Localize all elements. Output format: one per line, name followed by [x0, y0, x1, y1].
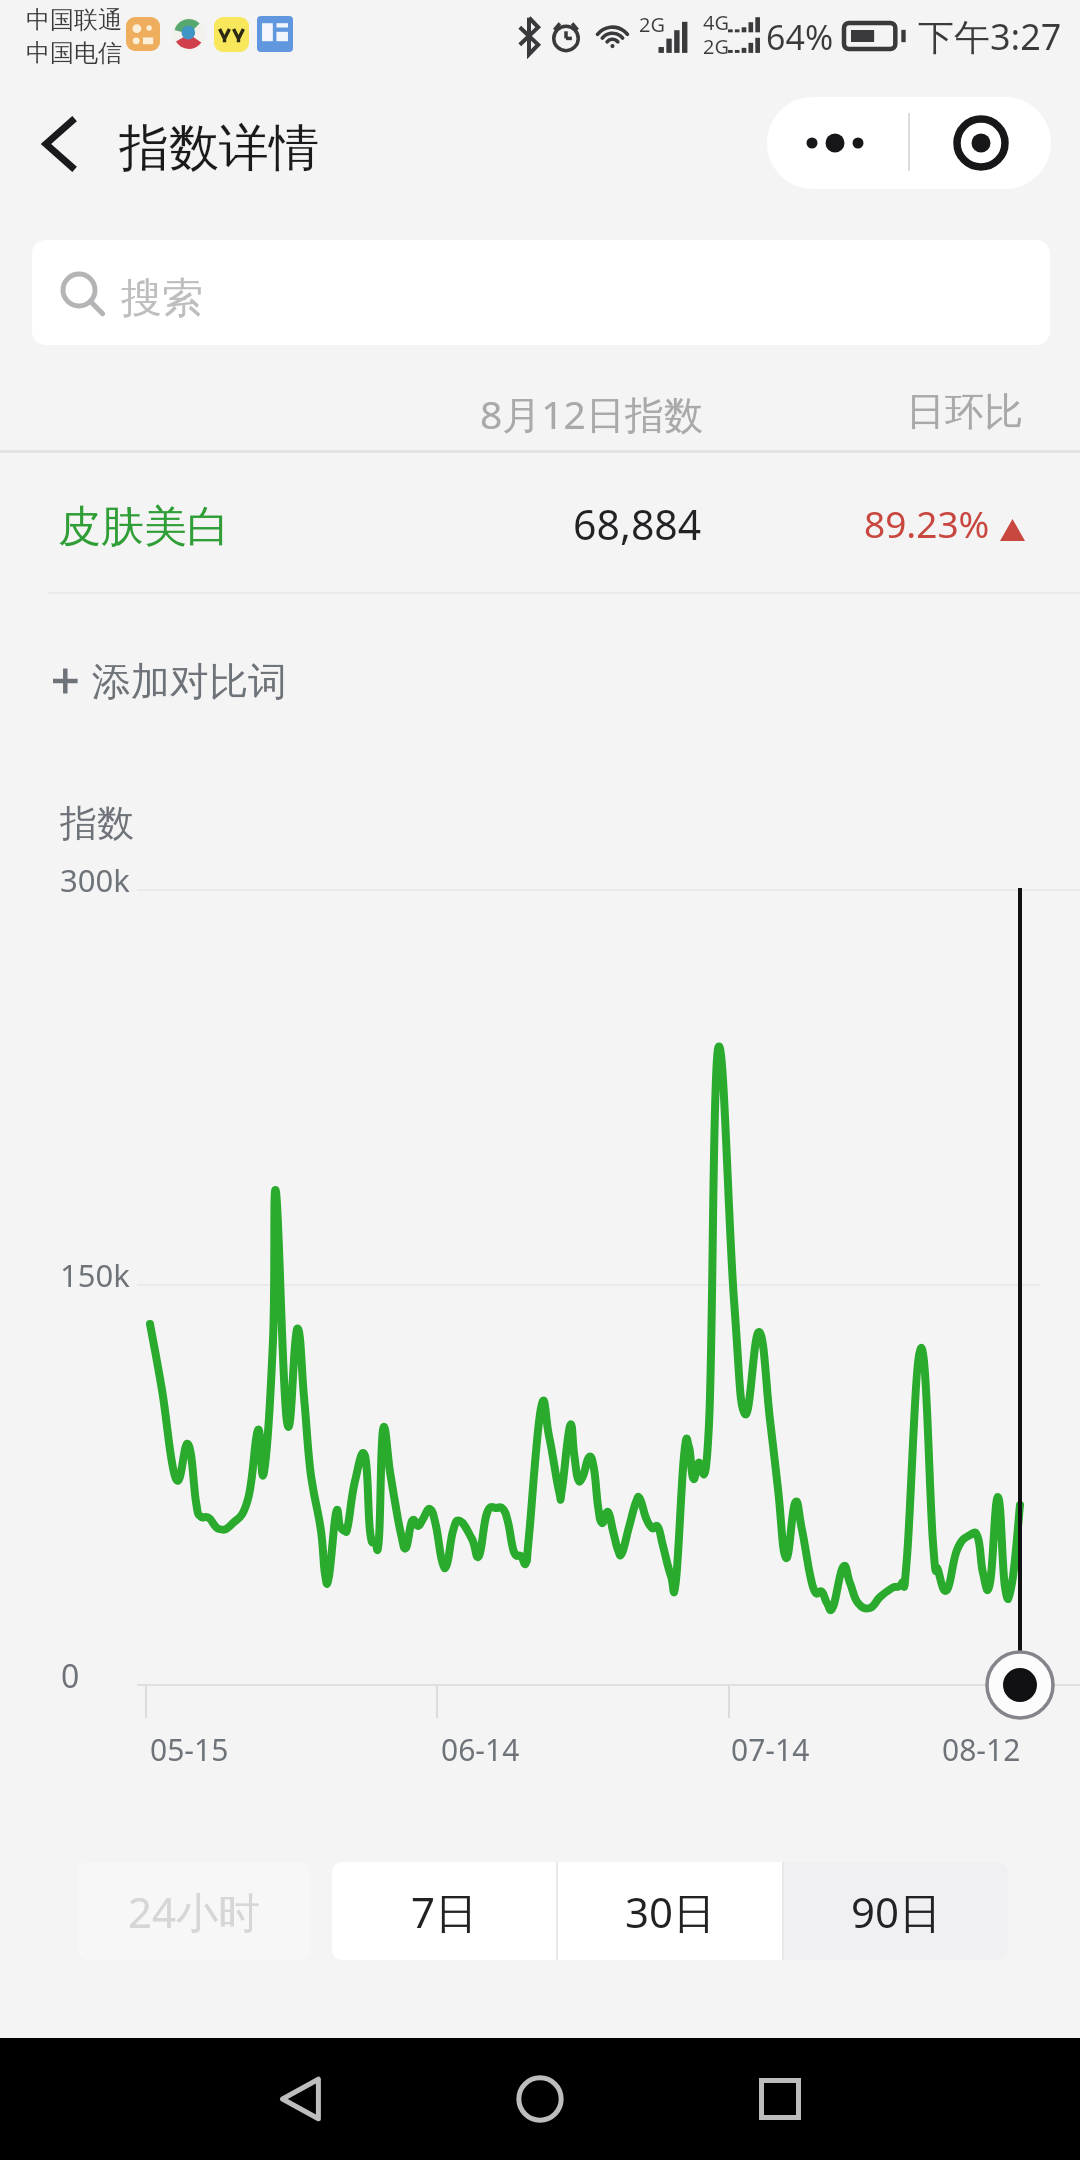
button[interactable]: Home	[492, 2038, 588, 2160]
staticText: 指数	[60, 800, 134, 847]
button[interactable]: Back	[252, 2038, 348, 2160]
staticText: 89.23%	[864, 498, 990, 548]
staticText: 07-14	[731, 1729, 810, 1770]
staticText: 4G	[703, 9, 729, 36]
staticText: 日环比	[906, 387, 1023, 436]
staticText: 300k	[60, 859, 130, 901]
staticText: 皮肤美白	[58, 500, 230, 554]
staticText: 8月12日指数	[480, 387, 703, 440]
button[interactable]: Back	[18, 104, 98, 184]
staticText: 2G	[703, 33, 729, 60]
staticText: 24小时	[128, 1883, 261, 1940]
staticText: 90日	[851, 1883, 942, 1940]
button[interactable]: Recent apps	[732, 2038, 828, 2160]
button[interactable]: 30日	[558, 1862, 782, 1960]
button[interactable]: 皮肤美白	[0, 451, 1080, 593]
staticText: 下午3:27	[918, 12, 1062, 61]
staticText: 150k	[60, 1254, 130, 1296]
staticText: 中国联通	[26, 5, 122, 35]
staticText: 30日	[625, 1883, 716, 1940]
staticText: 搜索	[121, 273, 203, 325]
staticText: 68,884	[573, 496, 702, 552]
staticText: 2G	[639, 11, 665, 38]
staticText: 7日	[411, 1883, 478, 1940]
staticText: 指数详情	[119, 117, 319, 180]
button[interactable]: 24小时	[78, 1862, 310, 1960]
staticText: 05-15	[150, 1729, 229, 1770]
button[interactable]: 90日	[784, 1862, 1008, 1960]
staticText: 添加对比词	[92, 657, 287, 706]
button[interactable]: 7日	[332, 1862, 556, 1960]
staticText: 中国电信	[26, 38, 122, 68]
button[interactable]: 添加对比词	[50, 646, 287, 716]
staticText: 06-14	[441, 1729, 520, 1770]
staticText: 08-12	[942, 1729, 1021, 1770]
button[interactable]: Close mini program	[910, 97, 1051, 189]
staticText: 0	[61, 1654, 80, 1698]
button[interactable]: 搜索	[32, 240, 1050, 345]
button[interactable]: More options	[767, 97, 908, 189]
staticText: 64%	[766, 14, 834, 60]
